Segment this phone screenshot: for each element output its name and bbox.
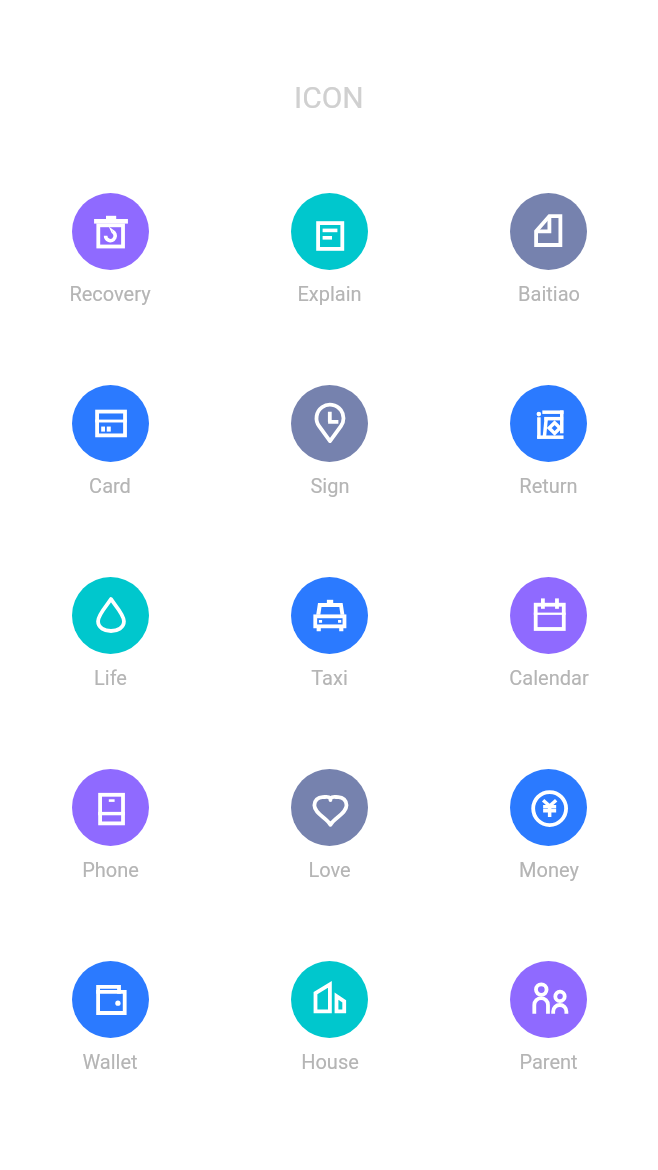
button[interactable]: Love (220, 769, 439, 881)
staticText: Love (308, 858, 351, 881)
button[interactable]: House (220, 961, 439, 1073)
button[interactable]: Parent (439, 961, 658, 1073)
staticText: ICON (294, 80, 364, 115)
button[interactable]: Return (439, 385, 658, 497)
button[interactable]: Card (0, 385, 220, 497)
staticText: Baitiao (518, 282, 580, 305)
staticText: Taxi (311, 666, 348, 689)
staticText: Life (94, 666, 127, 689)
button[interactable]: Baitiao (439, 193, 658, 305)
staticText: Parent (519, 1050, 578, 1073)
button[interactable]: Money (439, 769, 658, 881)
button[interactable]: Calendar (439, 577, 658, 689)
button[interactable]: Sign (220, 385, 439, 497)
staticText: Card (89, 474, 131, 497)
staticText: Wallet (82, 1050, 138, 1073)
staticText: Phone (82, 858, 139, 881)
button[interactable]: Taxi (220, 577, 439, 689)
button[interactable]: Recovery (0, 193, 220, 305)
staticText: Explain (297, 282, 362, 305)
staticText: Return (519, 474, 578, 497)
button[interactable]: Explain (220, 193, 439, 305)
button[interactable]: Phone (0, 769, 220, 881)
staticText: Recovery (69, 282, 151, 305)
button[interactable]: Wallet (0, 961, 220, 1073)
staticText: Calendar (509, 666, 589, 689)
staticText: House (301, 1050, 359, 1073)
button[interactable]: Life (0, 577, 220, 689)
staticText: Money (519, 858, 579, 881)
staticText: Sign (310, 474, 350, 497)
